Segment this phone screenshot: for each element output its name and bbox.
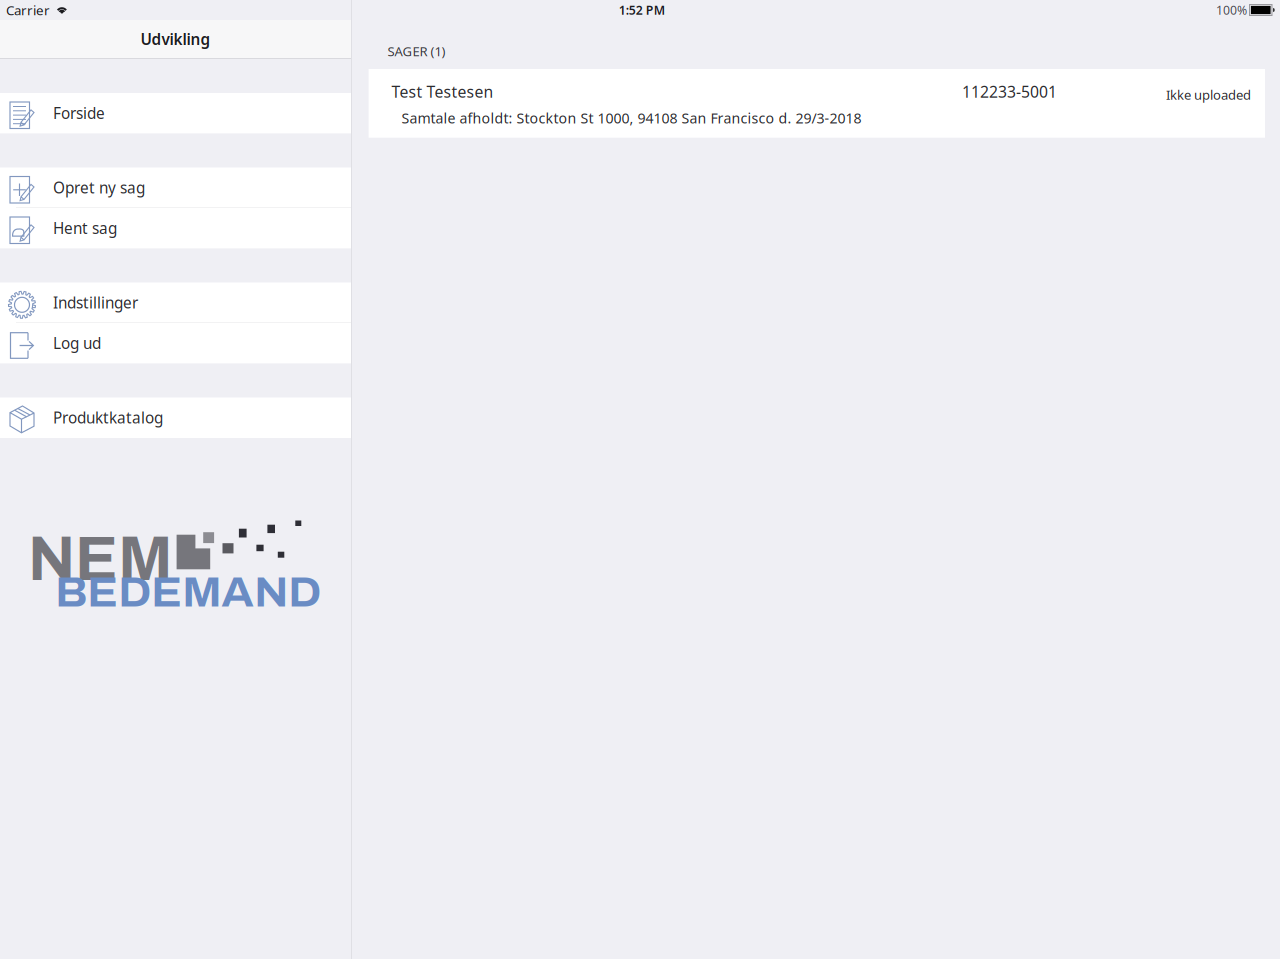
staticText: NEM: [28, 525, 173, 593]
button[interactable]: Indstillinger: [0, 282, 351, 323]
button[interactable]: Test Testesen: [369, 69, 1265, 138]
staticText: Indstillinger: [53, 292, 138, 313]
button[interactable]: Opret ny sag: [0, 167, 351, 208]
staticText: Udvikling: [140, 29, 210, 49]
button[interactable]: Produktkatalog: [0, 397, 351, 438]
staticText: Ikke uploaded: [1166, 86, 1251, 104]
staticText: Hent sag: [53, 218, 117, 238]
staticText: 1:52 PM: [619, 2, 665, 18]
staticText: SAGER (1): [388, 42, 446, 60]
staticText: Samtale afholdt: Stockton St 1000, 94108…: [402, 108, 862, 128]
staticText: Produktkatalog: [53, 407, 163, 428]
staticText: Log ud: [53, 333, 101, 353]
staticText: Opret ny sag: [53, 177, 145, 198]
staticText: Forside: [53, 103, 105, 123]
button[interactable]: Forside: [0, 93, 351, 133]
staticText: Test Testesen: [392, 81, 494, 102]
staticText: Carrier: [6, 1, 50, 19]
staticText: 100%: [1216, 2, 1247, 18]
button[interactable]: Log ud: [0, 323, 351, 363]
button[interactable]: Hent sag: [0, 208, 351, 248]
staticText: BEDEMAND: [55, 569, 321, 615]
staticText: 112233-5001: [962, 81, 1057, 102]
